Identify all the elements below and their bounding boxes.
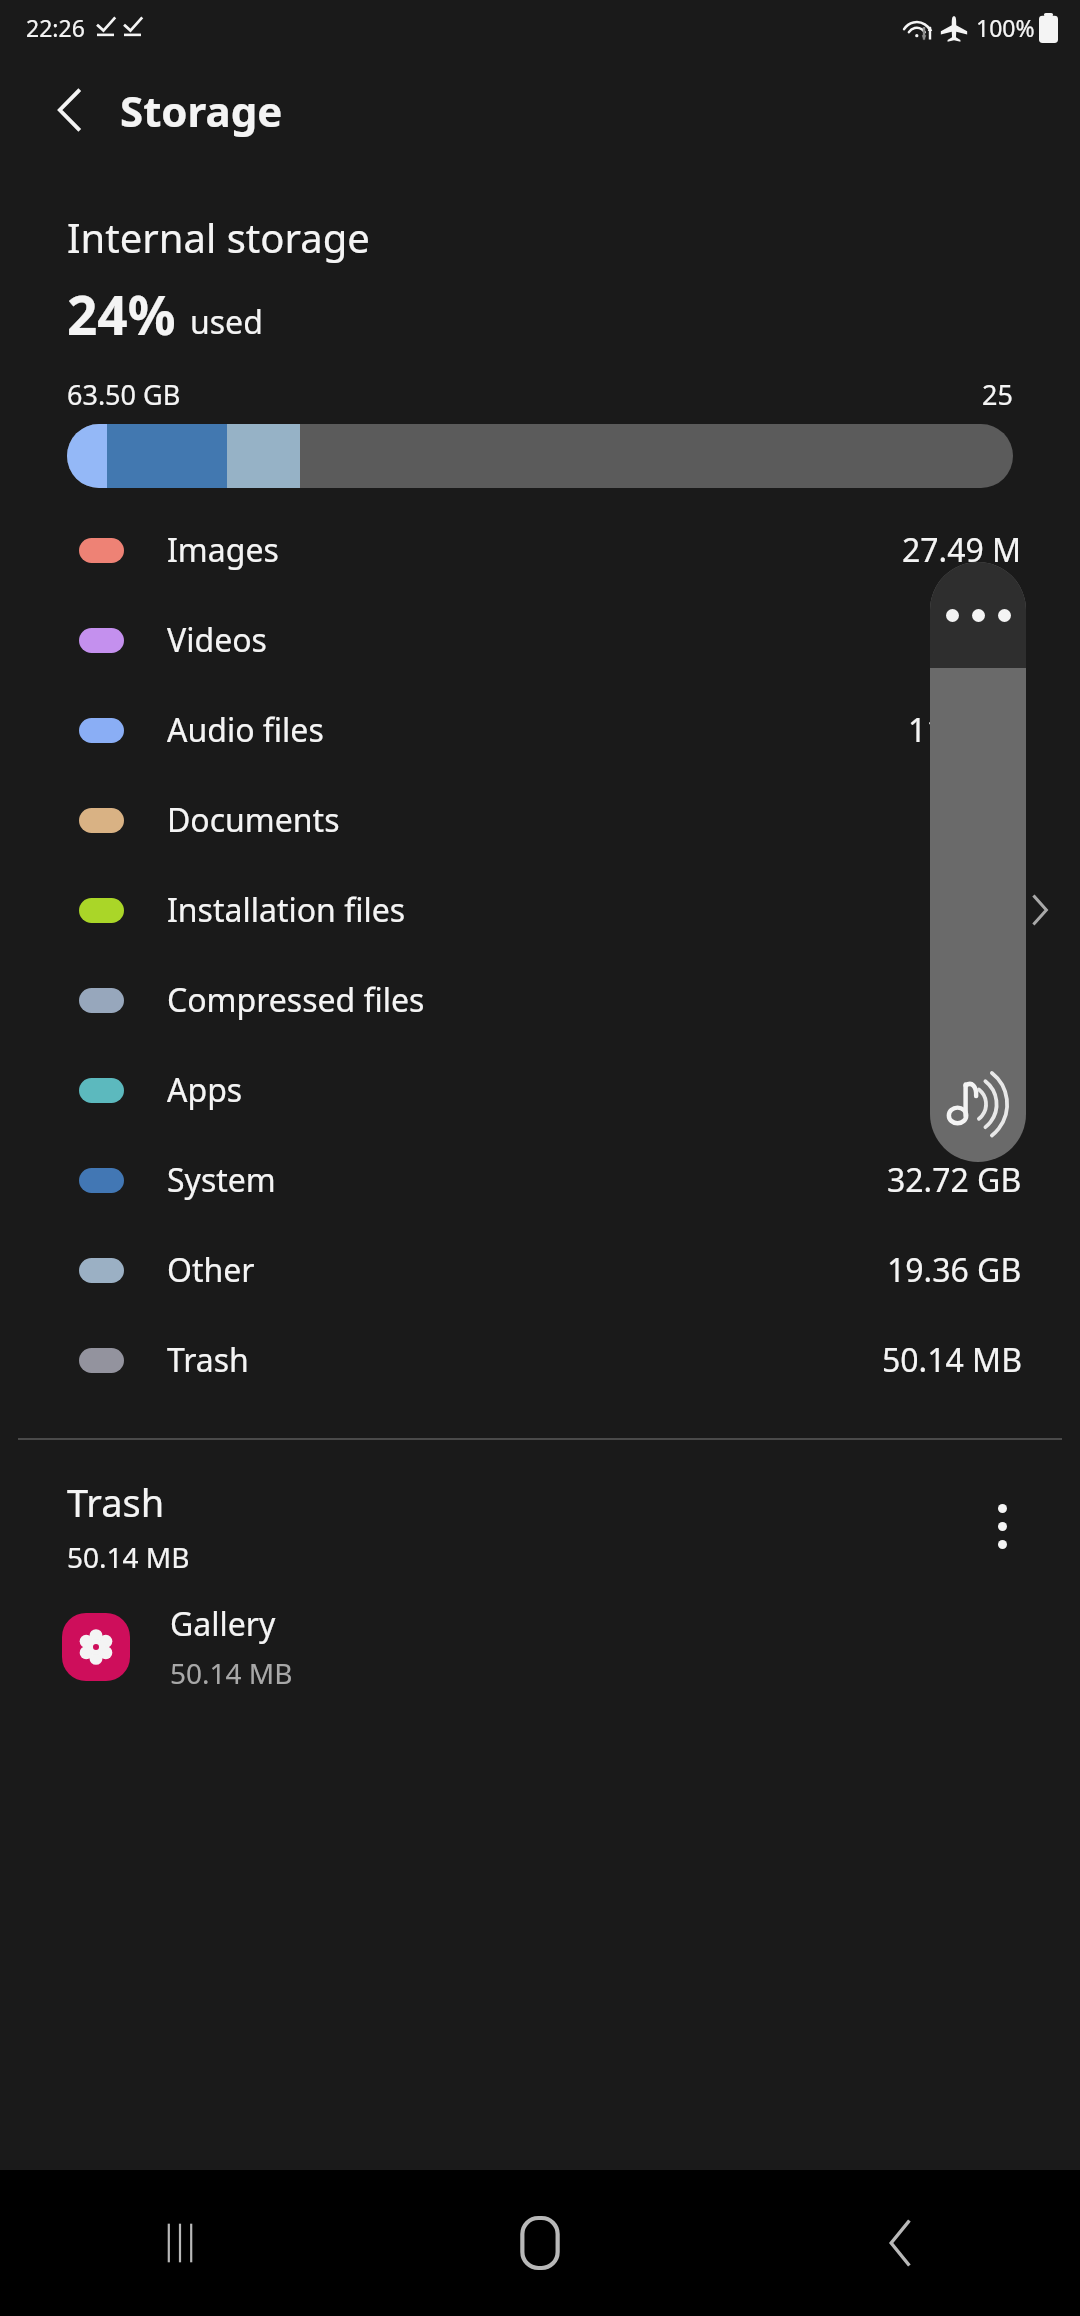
staticText: 50.14 MB [882, 1338, 1022, 1382]
staticText: 63.50 GB [67, 376, 181, 413]
button[interactable]: Installation files [0, 878, 1080, 942]
button[interactable]: System [0, 1148, 1080, 1212]
staticText: 19.36 GB [887, 1248, 1022, 1292]
staticText: Trash [67, 1476, 165, 1528]
button[interactable]: Apps [0, 1058, 1080, 1122]
button[interactable]: Gallery [0, 1602, 1080, 1692]
button[interactable]: Music player bubble [930, 562, 1026, 1162]
button[interactable]: Home [360, 2170, 720, 2316]
staticText: Storage [120, 82, 283, 139]
staticText: Images [167, 528, 279, 572]
staticText: Documents [167, 798, 340, 842]
staticText: Installation files [167, 888, 406, 932]
button[interactable]: Documents [0, 788, 1080, 852]
button[interactable]: Audio files [0, 698, 1080, 762]
button[interactable]: Trash [0, 1328, 1080, 1392]
staticText: used [190, 300, 263, 344]
staticText: Apps [167, 1068, 243, 1112]
staticText: 24% [67, 278, 176, 350]
staticText: 100% [976, 12, 1035, 43]
staticText: Audio files [167, 708, 324, 752]
button[interactable]: More options [969, 1493, 1035, 1559]
staticText: Compressed files [167, 978, 425, 1022]
button[interactable]: Other [0, 1238, 1080, 1302]
staticText: 50.14 MB [170, 1654, 293, 1692]
button[interactable]: Trash [0, 1476, 1080, 1576]
staticText: System [167, 1158, 276, 1202]
button[interactable]: Images [0, 518, 1080, 582]
staticText: 32.72 GB [887, 1158, 1022, 1202]
staticText: 11.08 G [908, 708, 1022, 752]
staticText: Trash [167, 1338, 249, 1382]
button[interactable]: Recent apps [0, 2170, 360, 2316]
button[interactable]: Back [720, 2170, 1080, 2316]
staticText: 268 M [929, 798, 1022, 842]
staticText: Internal storage [67, 210, 370, 264]
button[interactable]: Compressed files [0, 968, 1080, 1032]
staticText: Gallery [170, 1602, 276, 1646]
staticText: 0 [1003, 618, 1022, 662]
staticText: 25 [982, 376, 1013, 413]
staticText: 27.49 M [902, 528, 1022, 572]
staticText: 22:26 [26, 12, 85, 43]
staticText: Other [167, 1248, 255, 1292]
staticText: Videos [167, 618, 267, 662]
staticText: 50.14 MB [67, 1538, 190, 1576]
button[interactable]: Videos [0, 608, 1080, 672]
button[interactable]: Back [42, 82, 98, 138]
